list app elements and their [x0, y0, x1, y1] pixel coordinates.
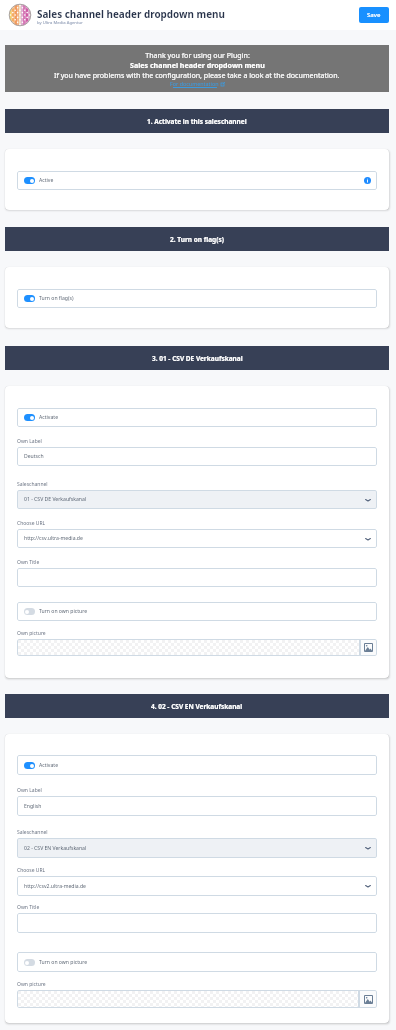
button[interactable]: Deutsch [17, 447, 377, 466]
staticText: Deutsch [24, 453, 44, 460]
staticText: Active [39, 177, 54, 184]
button[interactable] [17, 913, 377, 933]
staticText: Own Title [17, 559, 40, 566]
button[interactable]: Toggle off [17, 602, 377, 621]
button[interactable]: Toggle on [24, 414, 35, 421]
staticText: Saleschannel [17, 829, 48, 836]
button[interactable]: http://csv2.ultra-media.de [17, 876, 377, 896]
button[interactable]: Toggle off [24, 608, 35, 615]
staticText: by Ultra Media Agentur [37, 20, 83, 26]
staticText: 4. 02 - CSV EN Verkaufskanal [151, 702, 243, 711]
staticText: 01 - CSV DE Verkaufskanal [24, 496, 87, 503]
staticText: For documentation [170, 80, 219, 87]
button[interactable]: Toggle on [17, 289, 377, 308]
button[interactable]: Toggle off [24, 959, 35, 966]
button[interactable] [17, 568, 377, 587]
button[interactable]: Toggle off [17, 952, 377, 972]
staticText: 02 - CSV EN Verkaufskanal [24, 845, 87, 852]
staticText: Own picture [17, 981, 46, 988]
staticText: 2. Turn on flag(s) [170, 235, 224, 244]
staticText: Save [367, 11, 381, 19]
staticText: Own Label [17, 438, 42, 445]
button[interactable]: Info [364, 177, 371, 184]
button[interactable]: Save [359, 7, 389, 23]
staticText: Saleschannel [17, 481, 48, 488]
staticText: 1. Activate in this saleschannel [147, 117, 247, 126]
staticText: Sales channel header dropdown menu [130, 60, 265, 70]
other: App logo [8, 3, 32, 27]
staticText: Own Title [17, 904, 40, 911]
staticText: Choose URL [17, 520, 46, 527]
button[interactable]: For documentation [170, 80, 225, 88]
staticText: http://csv.ultra-media.de [24, 535, 83, 542]
button[interactable]: Toggle on [17, 171, 377, 190]
button[interactable]: Choose picture [359, 990, 377, 1008]
staticText: Activate [39, 414, 59, 421]
staticText: Thank you for using our Plugin: [145, 50, 250, 60]
button[interactable]: Toggle on [17, 755, 377, 775]
staticText: Activate [39, 762, 59, 769]
staticText: English [24, 803, 42, 810]
staticText: Turn on flag(s) [39, 295, 74, 302]
button[interactable]: English [17, 796, 377, 816]
staticText: http://csv2.ultra-media.de [24, 883, 86, 890]
button[interactable]: Choose picture [360, 639, 377, 656]
staticText: Sales channel header dropdown menu [37, 7, 225, 20]
staticText: If you have problems with the configurat… [54, 70, 340, 80]
button[interactable]: http://csv.ultra-media.de [17, 529, 377, 548]
staticText: Choose URL [17, 867, 46, 874]
button[interactable]: Toggle on [24, 295, 35, 302]
button[interactable]: Toggle on [24, 762, 35, 769]
staticText: Own Label [17, 787, 42, 794]
staticText: Turn on own picture [39, 608, 88, 615]
button[interactable]: Toggle on [17, 408, 377, 427]
button[interactable]: 02 - CSV EN Verkaufskanal [17, 838, 377, 858]
staticText: Turn on own picture [39, 959, 88, 966]
staticText: 3. 01 - CSV DE Verkaufskanal [152, 354, 243, 363]
button[interactable]: Toggle on [24, 177, 35, 184]
button[interactable]: 01 - CSV DE Verkaufskanal [17, 490, 377, 509]
staticText: Own picture [17, 630, 46, 637]
